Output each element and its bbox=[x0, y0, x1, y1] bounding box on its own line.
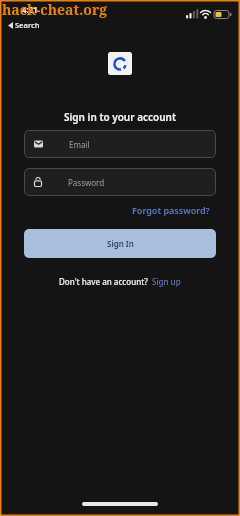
button[interactable]: Forgot password? bbox=[132, 204, 210, 216]
staticText: Search bbox=[15, 20, 40, 30]
staticText: Email bbox=[69, 139, 90, 150]
staticText: 4:21 bbox=[22, 4, 38, 15]
button[interactable]: Search bbox=[8, 20, 40, 30]
staticText: Don't have an account? bbox=[59, 276, 148, 287]
button[interactable]: Email bbox=[24, 130, 216, 158]
staticText: Sign In bbox=[107, 238, 134, 249]
staticText: Password bbox=[68, 177, 105, 188]
staticText: hack-cheat.org bbox=[2, 0, 108, 19]
staticText: Sign in to your account bbox=[64, 110, 177, 124]
button[interactable]: Sign In bbox=[24, 229, 216, 258]
button[interactable]: Password bbox=[24, 168, 216, 196]
button[interactable]: Sign up bbox=[152, 276, 181, 287]
